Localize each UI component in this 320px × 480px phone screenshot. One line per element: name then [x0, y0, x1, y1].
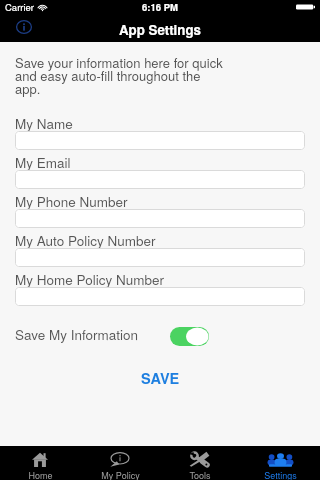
- staticText: Tools: [189, 469, 211, 480]
- button[interactable]: SAVE: [119, 364, 202, 393]
- button[interactable]: My Policy: [80, 446, 160, 480]
- staticText: Carrier: [5, 0, 35, 14]
- staticText: Save My Information: [15, 325, 139, 344]
- staticText: 6:16 PM: [142, 0, 178, 14]
- staticText: My Email: [15, 153, 71, 172]
- button[interactable]: Home: [0, 446, 80, 480]
- button[interactable]: Settings: [240, 446, 320, 480]
- staticText: SAVE: [141, 368, 180, 389]
- button[interactable]: [15, 287, 305, 306]
- button[interactable]: [15, 209, 305, 228]
- staticText: My Auto Policy Number: [15, 231, 156, 250]
- staticText: My Policy: [101, 469, 140, 480]
- button[interactable]: Save My Information: [170, 327, 209, 346]
- button[interactable]: [15, 170, 305, 189]
- button[interactable]: [15, 248, 305, 267]
- staticText: My Phone Number: [15, 192, 128, 211]
- staticText: App Settings: [119, 20, 201, 39]
- button[interactable]: Info: [0, 14, 48, 42]
- staticText: Settings: [264, 469, 297, 480]
- staticText: Save your information here for quick and…: [15, 53, 224, 98]
- button[interactable]: [15, 131, 305, 150]
- button[interactable]: Tools: [160, 446, 240, 480]
- staticText: My Name: [15, 114, 73, 133]
- staticText: My Home Policy Number: [15, 270, 164, 289]
- staticText: Home: [28, 469, 53, 480]
